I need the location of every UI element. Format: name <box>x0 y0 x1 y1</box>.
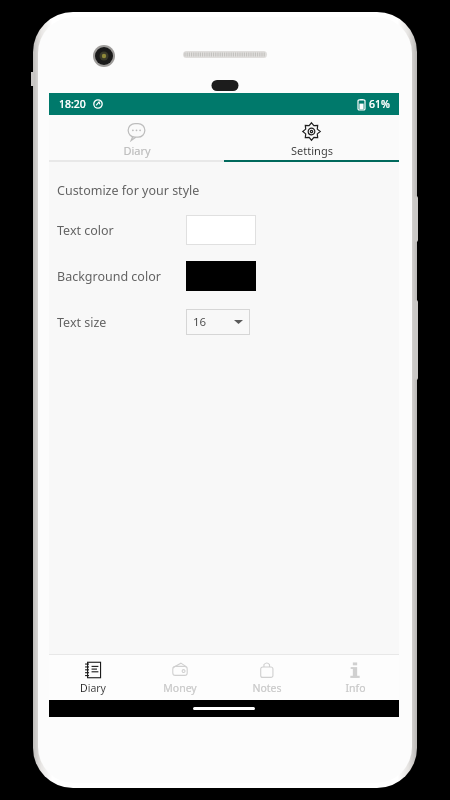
button[interactable]: Pick text color <box>186 215 256 245</box>
button[interactable]: Settings <box>224 115 399 160</box>
staticText: Money <box>163 681 197 695</box>
button[interactable]: Diary <box>49 115 224 160</box>
staticText: Background color <box>57 268 161 285</box>
staticText: 16 <box>193 314 207 330</box>
staticText: Settings <box>291 143 333 158</box>
button[interactable]: Info <box>311 655 399 700</box>
staticText: Text size <box>57 314 107 331</box>
staticText: 18:20 <box>59 97 86 111</box>
button[interactable]: Money <box>136 655 223 700</box>
button[interactable]: Diary <box>49 655 136 700</box>
staticText: Text color <box>57 222 114 239</box>
staticText: Customize for your style <box>57 182 200 199</box>
staticText: Diary <box>123 143 151 158</box>
staticText: Notes <box>252 681 282 695</box>
staticText: Diary <box>80 681 106 695</box>
button[interactable]: Notes <box>223 655 311 700</box>
button[interactable]: 16 <box>186 309 250 335</box>
staticText: 61% <box>369 97 390 111</box>
staticText: Info <box>345 681 366 695</box>
